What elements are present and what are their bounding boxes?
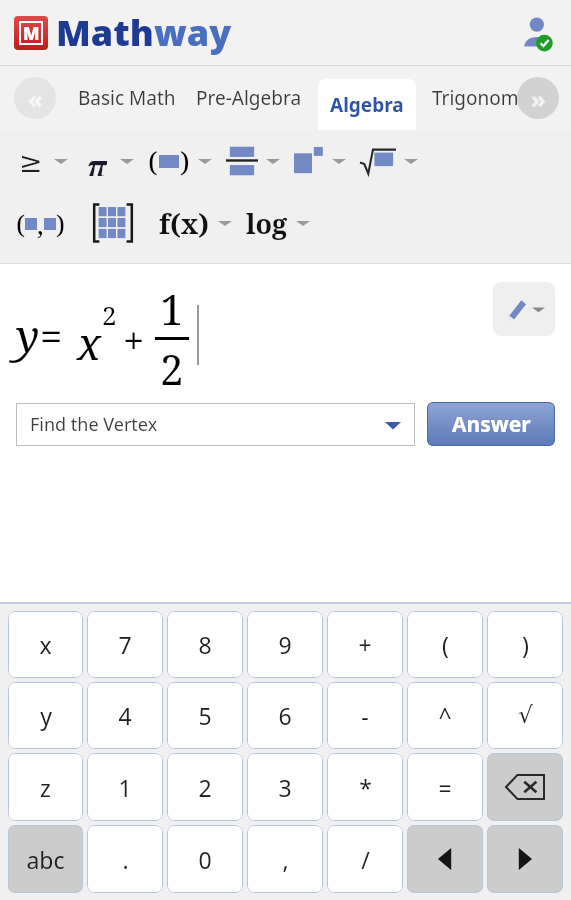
staticText: ) [180, 142, 190, 180]
staticText: Pre-Algebra [196, 85, 302, 111]
button[interactable]: 9 [247, 611, 323, 678]
button[interactable]: Pi [80, 135, 146, 187]
button[interactable]: 2 [167, 753, 243, 821]
staticText: f(x) [159, 205, 210, 242]
button[interactable]: √ [487, 682, 563, 749]
button[interactable]: x [8, 611, 83, 678]
staticText: = [438, 772, 452, 803]
staticText: 3 [278, 772, 292, 803]
button[interactable]: Exponent [292, 135, 358, 187]
button[interactable]: . [87, 825, 163, 893]
staticText: Find the Vertex [30, 412, 158, 437]
button[interactable]: y [8, 682, 83, 749]
staticText: way [154, 8, 232, 57]
button[interactable]: , [247, 825, 323, 893]
other: Exponent [294, 145, 324, 177]
button[interactable]: 7 [87, 611, 163, 678]
button[interactable]: 5 [167, 682, 243, 749]
staticText: ( [148, 142, 158, 180]
button[interactable]: Account [513, 10, 559, 56]
button[interactable]: * [327, 753, 403, 821]
button[interactable]: Logarithm [244, 197, 322, 249]
button[interactable]: ^ [407, 682, 483, 749]
button[interactable]: Previous tabs [14, 77, 56, 119]
staticText: + [123, 314, 145, 366]
staticText: abc [26, 844, 65, 875]
button[interactable]: ( [407, 611, 483, 678]
staticText: ( [442, 629, 449, 660]
button[interactable]: Coordinate point [14, 197, 67, 249]
button[interactable]: More tabs [517, 77, 559, 119]
button[interactable]: Inequality [14, 135, 80, 187]
button[interactable]: Backspace [487, 753, 563, 821]
staticText: Trigonomet [432, 85, 537, 111]
staticText: 6 [278, 700, 292, 731]
staticText: + [358, 629, 372, 660]
button[interactable]: Matrix [91, 197, 135, 249]
staticText: 9 [278, 629, 292, 660]
staticText: » [531, 82, 546, 115]
staticText: 5 [198, 700, 212, 731]
button[interactable]: Function [157, 197, 244, 249]
other: Function [159, 205, 210, 242]
button[interactable]: / [327, 825, 403, 893]
staticText: log [246, 205, 288, 242]
staticText: ) [522, 629, 529, 660]
staticText: ^ [438, 700, 452, 731]
staticText: Answer [452, 410, 531, 439]
staticText: 7 [118, 629, 132, 660]
other: Pi [82, 146, 112, 176]
staticText: * [359, 772, 372, 803]
staticText: x [39, 629, 52, 660]
staticText: Math [56, 8, 154, 57]
button[interactable]: Move left [407, 825, 483, 893]
button[interactable]: Basic Math [78, 66, 176, 130]
staticText: ≥ [19, 146, 43, 176]
staticText: 4 [118, 700, 132, 731]
button[interactable]: Pre-Algebra [196, 66, 302, 130]
button[interactable]: Parentheses [146, 135, 224, 187]
staticText: y [40, 700, 52, 731]
other: Inequality [16, 146, 46, 176]
button[interactable]: 4 [87, 682, 163, 749]
staticText: z [40, 772, 51, 803]
button[interactable]: + [327, 611, 403, 678]
button[interactable]: 1 [87, 753, 163, 821]
button[interactable]: 8 [167, 611, 243, 678]
other: Logarithm [246, 205, 288, 242]
button[interactable]: 6 [247, 682, 323, 749]
staticText: 0 [198, 844, 212, 875]
other: Matrix [93, 202, 133, 244]
staticText: Algebra [330, 92, 404, 118]
button[interactable]: Edit input mode [493, 282, 555, 336]
staticText: √ [518, 702, 533, 729]
button[interactable]: z [8, 753, 83, 821]
button[interactable]: = [407, 753, 483, 821]
staticText: = [40, 308, 63, 362]
button[interactable]: Square root [358, 135, 430, 187]
staticText: , [282, 844, 289, 875]
button[interactable]: abc [8, 825, 83, 893]
button[interactable]: ) [487, 611, 563, 678]
staticText: 1 [118, 772, 132, 803]
button[interactable]: Fraction [224, 135, 292, 187]
staticText: . [122, 844, 129, 875]
button[interactable]: 0 [167, 825, 243, 893]
staticText: ) [56, 206, 65, 241]
staticText: y [16, 305, 40, 365]
staticText: 2 [198, 772, 212, 803]
button[interactable]: Trigonomet [432, 66, 537, 130]
button[interactable]: Find the Vertex [16, 403, 415, 446]
other: Parentheses [148, 142, 190, 180]
staticText: 2 [160, 340, 184, 390]
button[interactable]: Move right [487, 825, 563, 893]
other: Coordinate point [16, 206, 65, 241]
staticText: ( [16, 206, 25, 241]
staticText: x [77, 313, 102, 373]
button[interactable]: 3 [247, 753, 323, 821]
button[interactable]: - [327, 682, 403, 749]
staticText: « [28, 82, 43, 115]
button[interactable]: Answer [427, 402, 555, 446]
staticText: π [87, 146, 107, 176]
button[interactable]: Algebra [330, 79, 404, 130]
